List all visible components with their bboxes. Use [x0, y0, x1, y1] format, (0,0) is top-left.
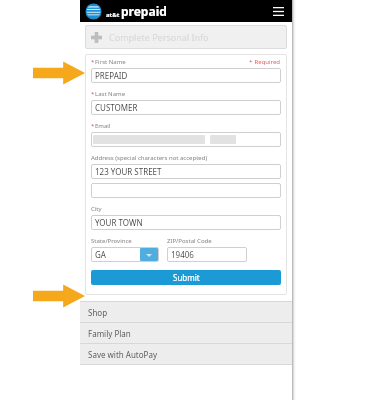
button[interactable]: Submit [91, 270, 281, 285]
staticText: Required [253, 58, 281, 66]
staticText: YOUR TOWN [95, 217, 143, 228]
other: Open state list [140, 248, 158, 261]
staticText: First Name [95, 58, 126, 66]
staticText: * [91, 122, 95, 130]
button[interactable]: YOUR TOWN [91, 215, 281, 230]
button[interactable]: 123 YOUR STREET [91, 164, 281, 179]
staticText: 123 YOUR STREET [95, 166, 162, 177]
staticText: City [91, 205, 102, 213]
staticText: CUSTOMER [95, 102, 138, 113]
staticText: Submit [173, 272, 200, 283]
staticText: prepaid [121, 3, 167, 19]
staticText: Last Name [95, 90, 126, 98]
button[interactable]: Save with AutoPay [80, 344, 292, 364]
staticText: Family Plan [88, 328, 131, 339]
button[interactable]: 19406 [167, 247, 247, 262]
staticText: at&t [106, 11, 120, 19]
button[interactable]: PREPAID [91, 68, 281, 83]
staticText: 19406 [171, 249, 194, 260]
staticText: * [91, 90, 95, 98]
staticText: Shop [88, 307, 108, 318]
staticText: Save with AutoPay [88, 349, 157, 360]
button[interactable]: CUSTOMER [91, 100, 281, 115]
button[interactable]: GA [91, 247, 159, 262]
staticText: Complete Personal Info [109, 31, 209, 43]
staticText: State/Province [91, 237, 132, 245]
staticText: * [91, 58, 95, 66]
button[interactable] [91, 183, 281, 198]
button[interactable]: Complete Personal Info [85, 25, 287, 49]
button[interactable]: Shop [80, 302, 292, 322]
button[interactable]: Menu [271, 4, 285, 18]
staticText: * [249, 58, 253, 66]
button[interactable]: Family Plan [80, 323, 292, 343]
staticText: ZIP/Postal Code [167, 237, 212, 245]
staticText: PREPAID [95, 70, 128, 81]
staticText: Email [95, 122, 111, 130]
staticText: Address (special characters not accepted… [91, 154, 208, 162]
staticText: GA [95, 249, 106, 260]
button[interactable] [91, 132, 281, 147]
